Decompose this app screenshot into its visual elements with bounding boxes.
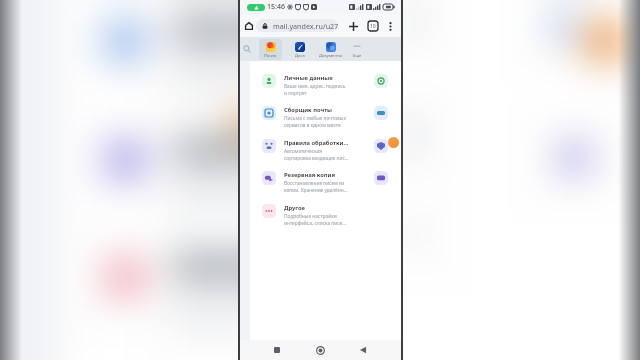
button[interactable]: По <box>374 171 402 185</box>
staticText: Па <box>396 106 402 114</box>
button[interactable]: Правила обработки… <box>262 139 349 162</box>
staticText: Бе <box>396 139 402 147</box>
button[interactable]: Бе <box>374 139 402 153</box>
button[interactable]: Back <box>355 342 371 358</box>
button[interactable]: mail.yandex.ru/u2705 <box>256 19 338 32</box>
staticText: 10 <box>370 23 376 30</box>
staticText: Правила обработки… <box>284 139 349 147</box>
button[interactable]: Па <box>374 106 402 120</box>
button[interactable]: Диск <box>288 39 311 60</box>
button[interactable]: Личные данные <box>262 74 349 97</box>
staticText: Диск <box>295 53 305 59</box>
staticText: mail.yandex.ru/u2705 <box>273 21 338 31</box>
staticText: Документы <box>319 53 342 59</box>
button[interactable]: Бе <box>374 74 402 88</box>
staticText: Личные данные <box>284 74 333 82</box>
staticText: Восстановление писем из копии. Хранение … <box>284 180 349 194</box>
button[interactable]: Документы <box>319 39 342 60</box>
staticText: По <box>396 171 402 179</box>
button[interactable]: Search <box>240 42 254 56</box>
staticText: Ваше имя, адрес, подпись и портрет <box>284 83 349 97</box>
staticText: Подробные настройки интерфейса, списка п… <box>284 213 349 227</box>
button[interactable]: Сборщик почты <box>262 106 349 129</box>
button[interactable]: Ещё <box>345 39 368 60</box>
button[interactable]: Home <box>312 342 328 358</box>
button[interactable]: Другое <box>262 204 349 227</box>
staticText: Бе <box>396 74 402 82</box>
button[interactable]: More options <box>383 19 397 33</box>
staticText: Другое <box>284 204 305 212</box>
button[interactable]: Резервная копия <box>262 171 349 194</box>
button[interactable]: New tab <box>346 19 360 33</box>
staticText: Почта <box>264 53 277 59</box>
button[interactable]: Home <box>242 19 255 32</box>
staticText: Сборщик почты <box>284 106 333 114</box>
staticText: 15:46 <box>267 2 285 12</box>
staticText: Автоматическая сортировка входящих писем… <box>284 148 349 162</box>
button[interactable]: Tabs <box>366 19 380 33</box>
staticText: Ещё <box>353 53 362 59</box>
button[interactable]: Почта <box>259 39 282 60</box>
button[interactable]: Recent apps <box>269 342 285 358</box>
staticText: Письма с любых почтовых сервисов в одном… <box>284 115 349 129</box>
staticText: Резервная копия <box>284 171 335 179</box>
